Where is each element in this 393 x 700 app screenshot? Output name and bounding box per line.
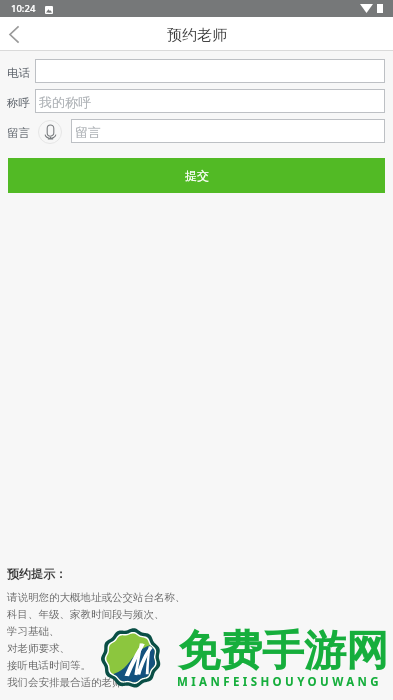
staticText: 预约提示：	[7, 566, 67, 581]
button[interactable]: 返回	[0, 20, 28, 48]
staticText: 电话	[7, 66, 30, 80]
button[interactable]: 提交	[8, 158, 385, 193]
staticText: 留言	[75, 124, 101, 140]
button[interactable]	[35, 59, 385, 83]
staticText: 科目、年级、家教时间段与频次、	[7, 608, 165, 621]
staticText: 留言	[7, 126, 30, 140]
button[interactable]: 留言	[71, 119, 385, 143]
staticText: 免费手游网	[178, 625, 388, 678]
staticText: 提交	[185, 168, 209, 183]
staticText: 请说明您的大概地址或公交站台名称、	[7, 591, 186, 604]
button[interactable]: 我的称呼	[35, 89, 385, 113]
staticText: 学习基础、	[7, 625, 60, 638]
staticText: 对老师要求、	[7, 642, 70, 655]
staticText: 称呼	[7, 96, 30, 110]
button[interactable]: 语音输入	[37, 120, 63, 144]
staticText: 我们会安排最合适的老师	[7, 676, 123, 689]
staticText: 10:24	[11, 2, 36, 15]
staticText: 预约老师	[167, 26, 227, 45]
staticText: MIANFEISHOUYOUWANG	[177, 674, 383, 690]
staticText: 接听电话时间等。	[7, 659, 91, 672]
staticText: 我的称呼	[39, 94, 91, 110]
